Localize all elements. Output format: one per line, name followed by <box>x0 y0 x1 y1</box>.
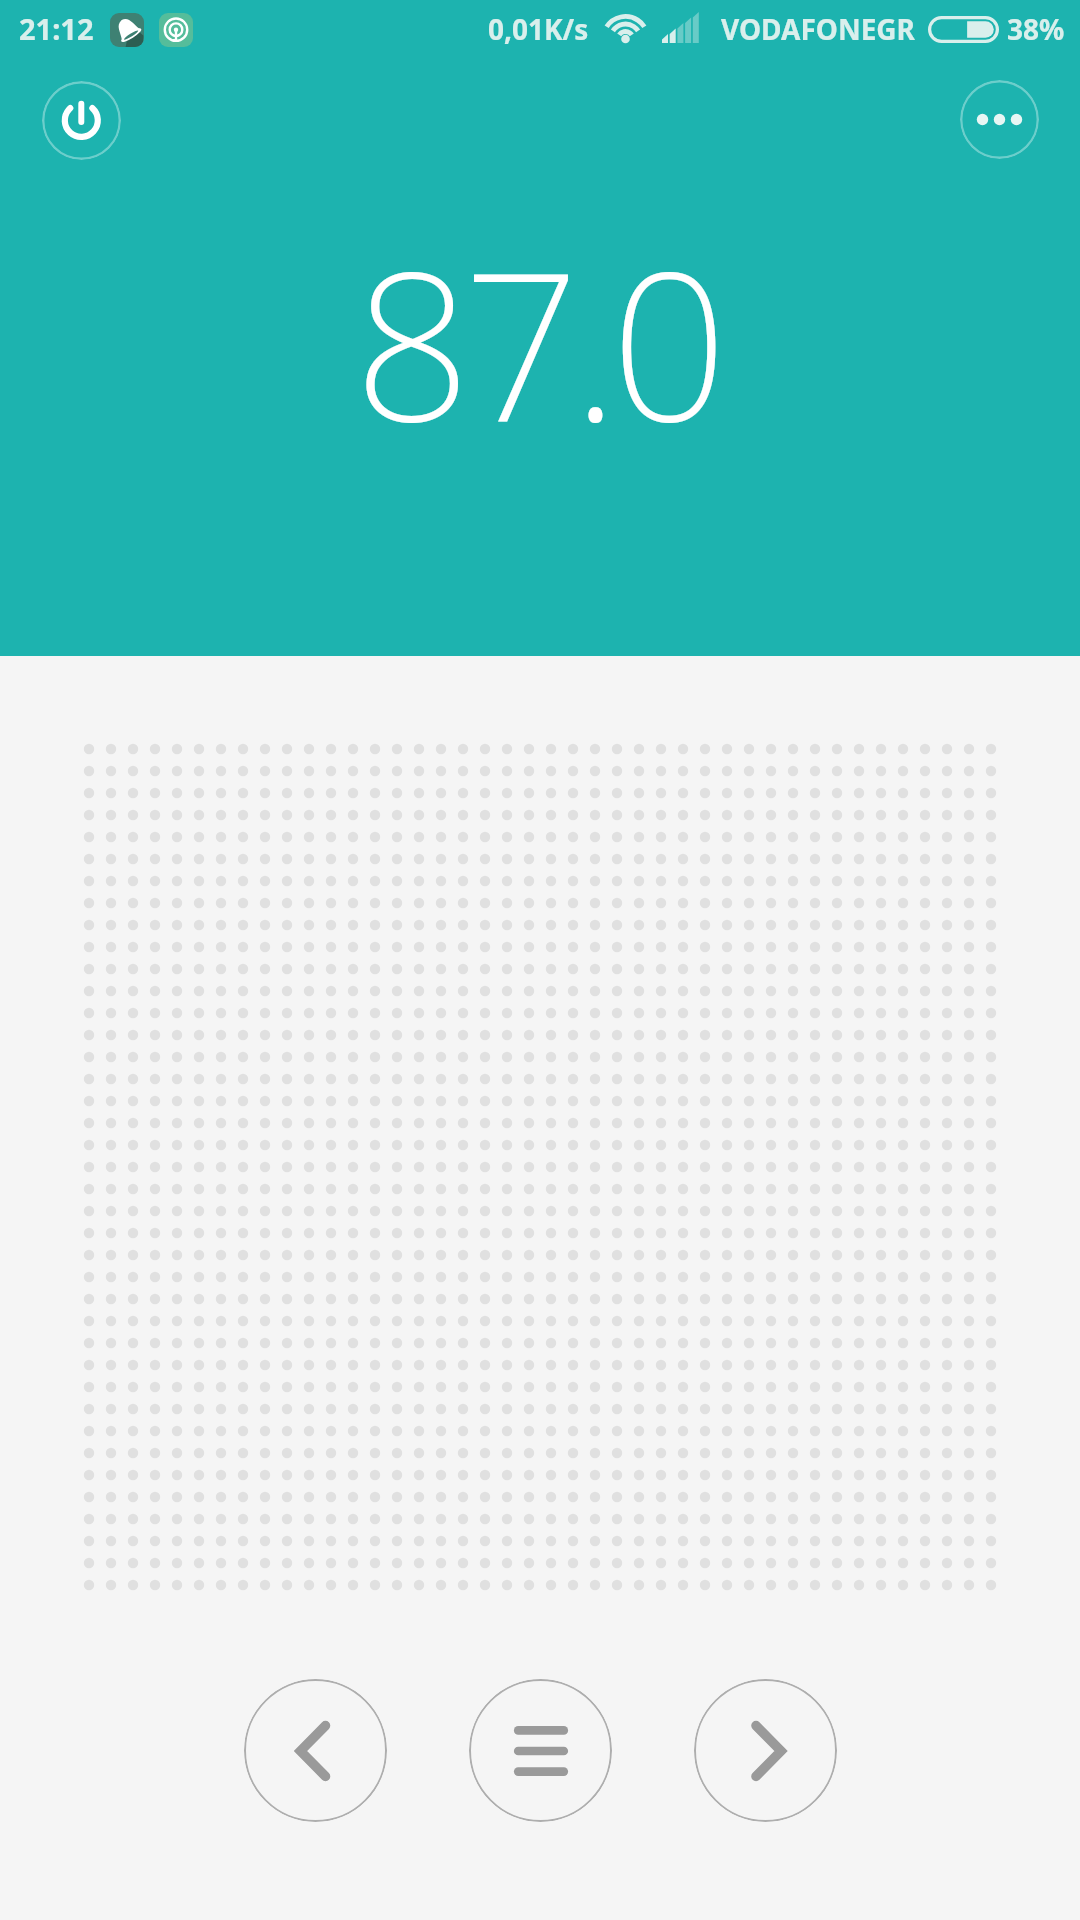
staticText: 0,01K/s <box>488 10 589 48</box>
button[interactable]: More options <box>960 80 1039 159</box>
staticText: 87.0 <box>354 202 720 481</box>
button[interactable]: Station list <box>469 1679 612 1822</box>
staticText: VODAFONEGR <box>721 10 915 48</box>
button[interactable]: Power <box>42 81 121 160</box>
button[interactable]: Next station <box>694 1679 837 1822</box>
staticText: 38% <box>1007 10 1065 48</box>
staticText: 21:12 <box>19 9 94 48</box>
button[interactable]: Previous station <box>244 1679 387 1822</box>
